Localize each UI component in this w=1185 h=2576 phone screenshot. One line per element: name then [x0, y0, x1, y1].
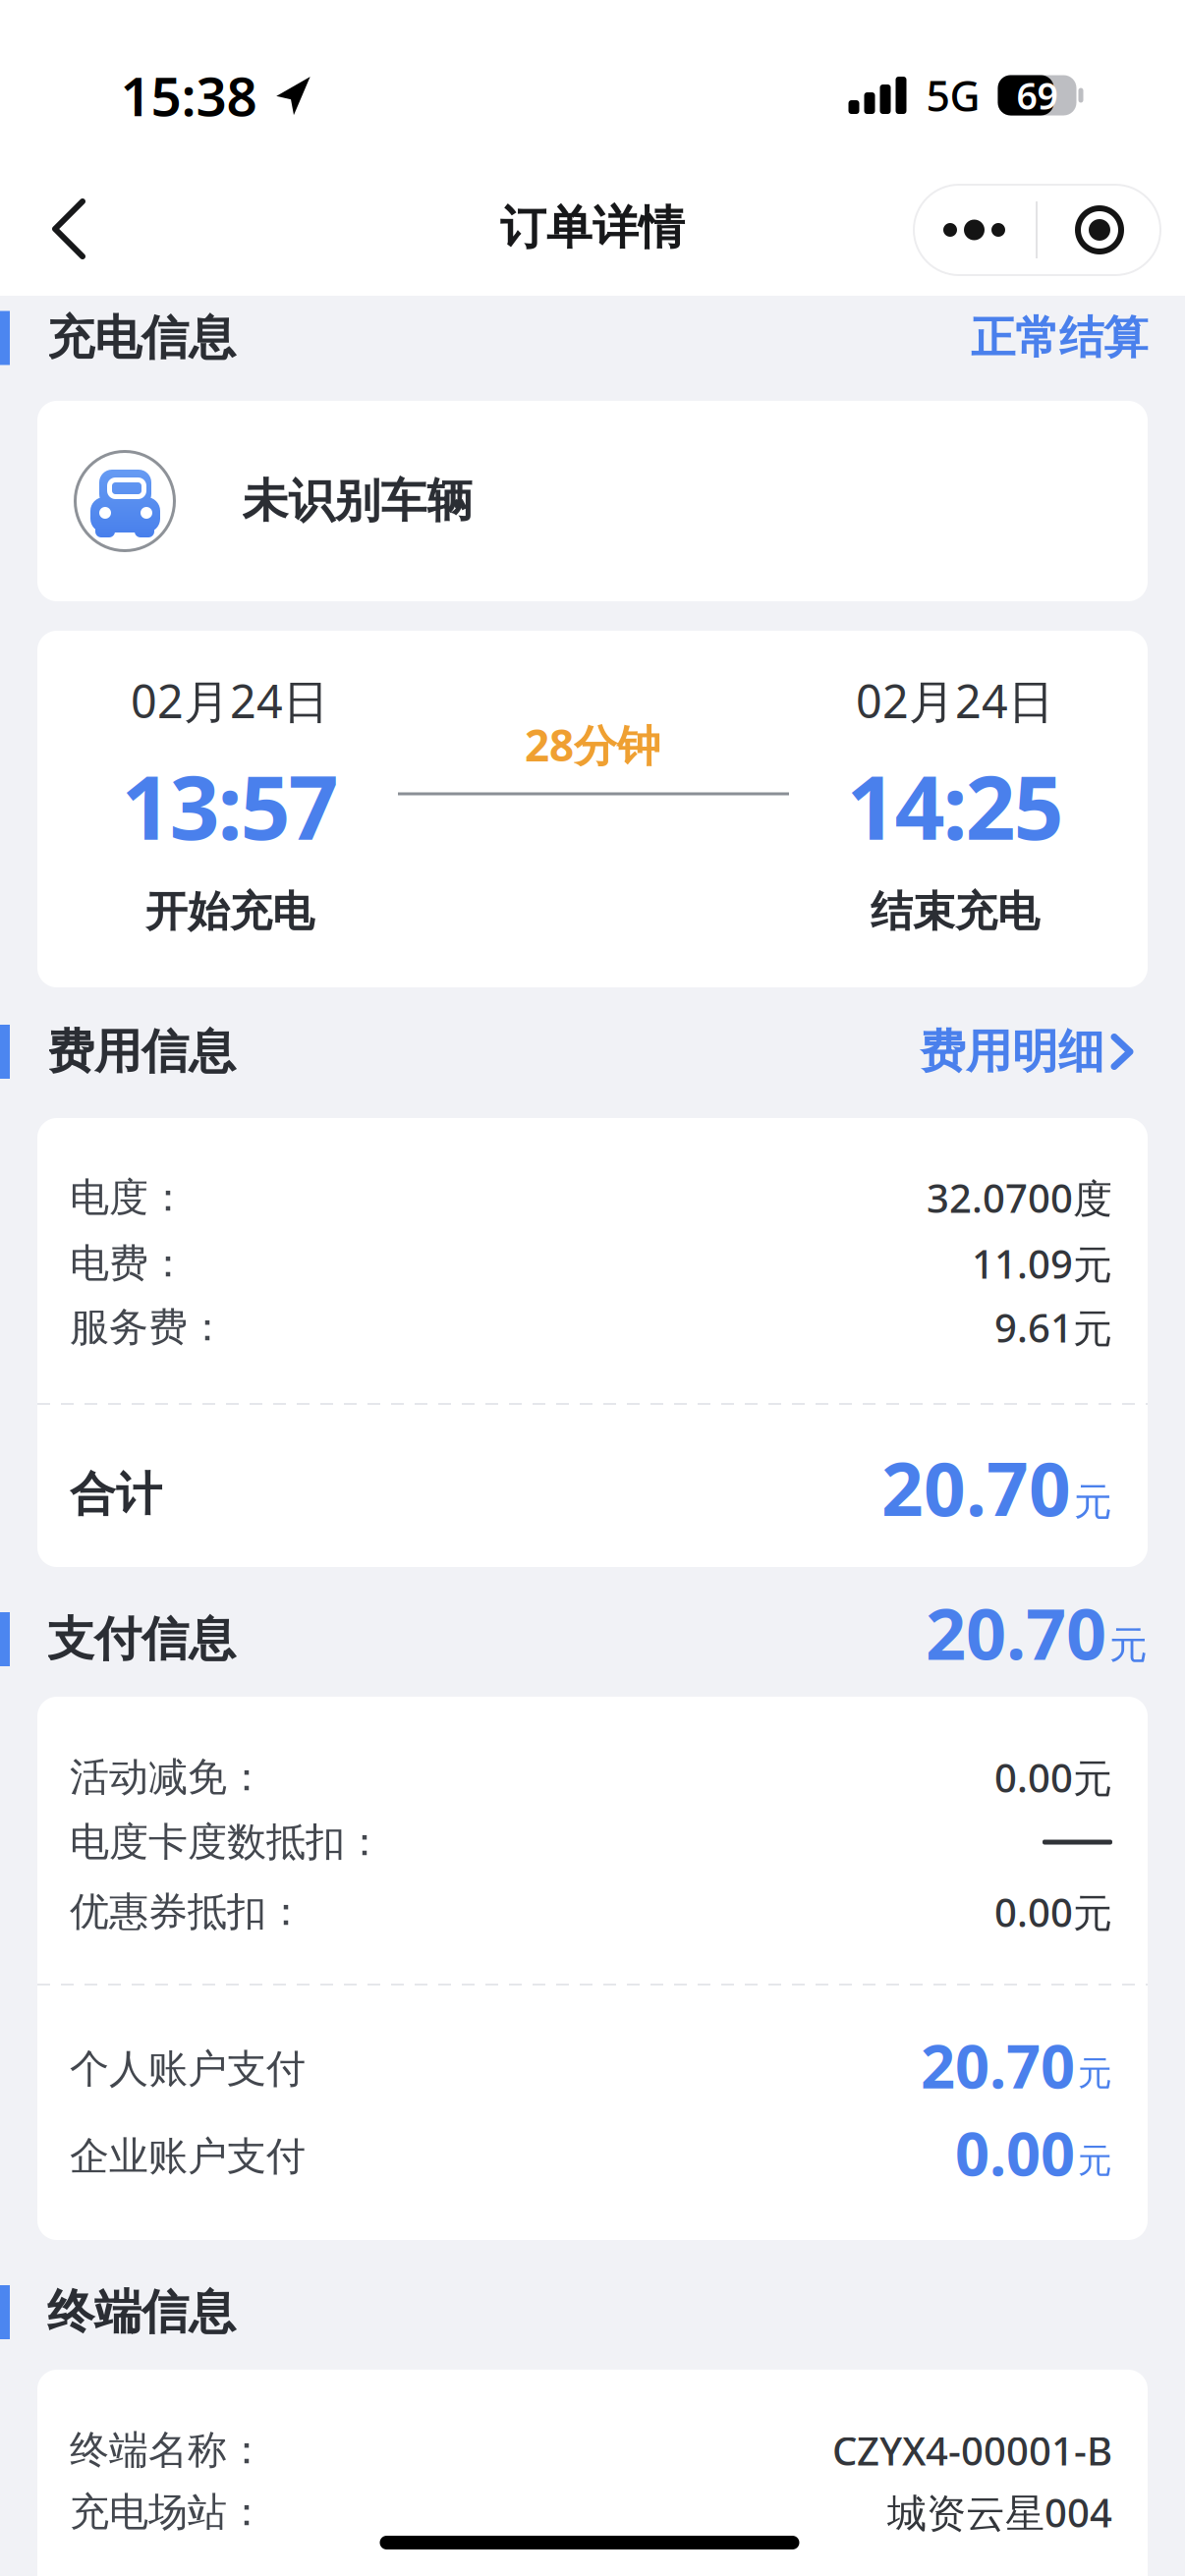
staticText: 费用信息 — [47, 1023, 236, 1081]
staticText: 电费： — [70, 1239, 188, 1288]
staticText: 充电场站： — [70, 2488, 266, 2536]
staticText: 优惠券抵扣： — [70, 1888, 306, 1936]
staticText: 0.00 — [955, 2113, 1075, 2193]
staticText: 支付信息 — [47, 1610, 236, 1668]
staticText: 20.70 — [881, 1439, 1071, 1536]
staticText: 企业账户支付 — [70, 2132, 306, 2181]
staticText: 充电信息 — [47, 309, 236, 367]
staticText: 个人账户支付 — [70, 2045, 306, 2093]
staticText: 电度卡度数抵扣： — [70, 1818, 384, 1866]
staticText: 69 — [1016, 71, 1058, 120]
staticText: CZYX4-00001-B — [832, 2424, 1112, 2476]
button[interactable]: Close — [1038, 184, 1161, 276]
staticText: 02月24日 — [131, 670, 329, 731]
staticText: 14:25 — [846, 747, 1064, 864]
staticText: 服务费： — [70, 1303, 227, 1351]
staticText: 5G — [926, 67, 980, 123]
staticText: 元 — [1074, 1479, 1112, 1525]
staticText: 活动减免： — [70, 1753, 266, 1801]
staticText: 0.00元 — [994, 1751, 1112, 1803]
button[interactable]: Back — [41, 201, 96, 256]
staticText: 未识别车辆 — [242, 473, 473, 529]
staticText: 订单详情 — [500, 200, 685, 256]
staticText: 结束充电 — [871, 886, 1040, 937]
staticText: 终端名称： — [70, 2426, 266, 2474]
staticText: 11.09元 — [972, 1237, 1112, 1289]
staticText: 费用明细 — [920, 1024, 1104, 1080]
staticText: 正常结算 — [971, 311, 1148, 365]
staticText: 20.70 — [926, 1585, 1106, 1679]
staticText: 合计 — [70, 1466, 162, 1522]
staticText: 20.70 — [921, 2025, 1075, 2105]
staticText: 元 — [1109, 1622, 1148, 1669]
staticText: 02月24日 — [856, 670, 1054, 731]
staticText: 元 — [1078, 2140, 1112, 2182]
button[interactable]: 费用明细 — [920, 1024, 1148, 1080]
staticText: 城资云星004 — [887, 2486, 1112, 2538]
staticText: 电度： — [70, 1173, 188, 1222]
staticText: 13:57 — [121, 747, 339, 864]
staticText: 开始充电 — [145, 886, 314, 937]
staticText: 0.00元 — [994, 1886, 1112, 1938]
staticText: 终端信息 — [47, 2283, 236, 2341]
staticText: 28分钟 — [525, 716, 660, 773]
staticText: 15:38 — [120, 60, 257, 131]
button[interactable]: More — [913, 184, 1036, 276]
staticText: 32.0700度 — [927, 1171, 1112, 1224]
staticText: 9.61元 — [994, 1301, 1112, 1353]
staticText: 元 — [1078, 2052, 1112, 2094]
